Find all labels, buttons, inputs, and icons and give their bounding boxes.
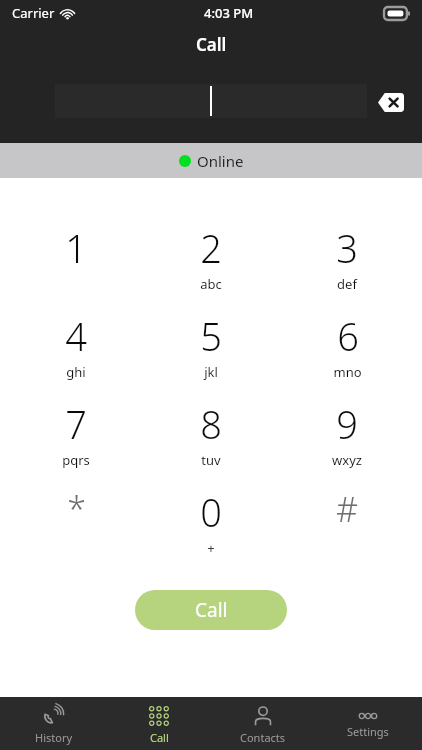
button[interactable]: 4 <box>16 304 136 392</box>
staticText: 0 <box>200 486 222 538</box>
staticText: 1 <box>65 222 87 274</box>
button[interactable]: History <box>4 697 104 750</box>
button[interactable]: 3 <box>287 216 407 304</box>
staticText: abc <box>200 275 222 293</box>
button[interactable]: 2 <box>151 216 271 304</box>
button[interactable]: 5 <box>151 304 271 392</box>
button[interactable]: 0 <box>151 480 271 568</box>
button[interactable]: Settings <box>318 697 418 750</box>
button[interactable]: 9 <box>287 392 407 480</box>
staticText: 2 <box>200 222 222 274</box>
button[interactable]: 8 <box>151 392 271 480</box>
staticText: History <box>35 730 73 745</box>
staticText: Online <box>197 151 244 171</box>
staticText: ghi <box>66 363 86 381</box>
staticText: Call <box>150 730 169 745</box>
staticText: 9 <box>336 398 358 450</box>
staticText: Settings <box>347 724 389 739</box>
staticText: pqrs <box>62 451 90 469</box>
staticText: 7 <box>65 398 87 450</box>
staticText: Call <box>195 597 228 623</box>
button[interactable]: 6 <box>287 304 407 392</box>
button[interactable]: Backspace <box>376 90 406 114</box>
staticText: 5 <box>200 310 222 362</box>
staticText: mno <box>333 363 362 381</box>
staticText: Call <box>196 33 227 56</box>
staticText: tuv <box>201 451 221 469</box>
staticText: 8 <box>200 398 222 450</box>
staticText: def <box>337 275 357 293</box>
staticText: Contacts <box>240 730 286 745</box>
button[interactable]: 1 <box>16 216 136 304</box>
button[interactable]: * <box>16 480 136 568</box>
button[interactable]: Online <box>0 143 422 178</box>
staticText: 4:03 PM <box>204 4 254 22</box>
staticText: # <box>336 486 358 532</box>
button[interactable]: Call <box>135 590 287 630</box>
button[interactable]: # <box>287 480 407 568</box>
staticText: jkl <box>204 363 218 381</box>
button[interactable]: 7 <box>16 392 136 480</box>
staticText: + <box>207 539 215 557</box>
staticText: 6 <box>337 310 359 362</box>
staticText: * <box>67 486 86 532</box>
staticText: wxyz <box>332 451 362 469</box>
staticText: 4 <box>65 310 87 362</box>
staticText: Carrier <box>12 4 55 22</box>
button[interactable]: Call <box>109 697 209 750</box>
button[interactable]: Contacts <box>213 697 313 750</box>
staticText: 3 <box>336 222 358 274</box>
